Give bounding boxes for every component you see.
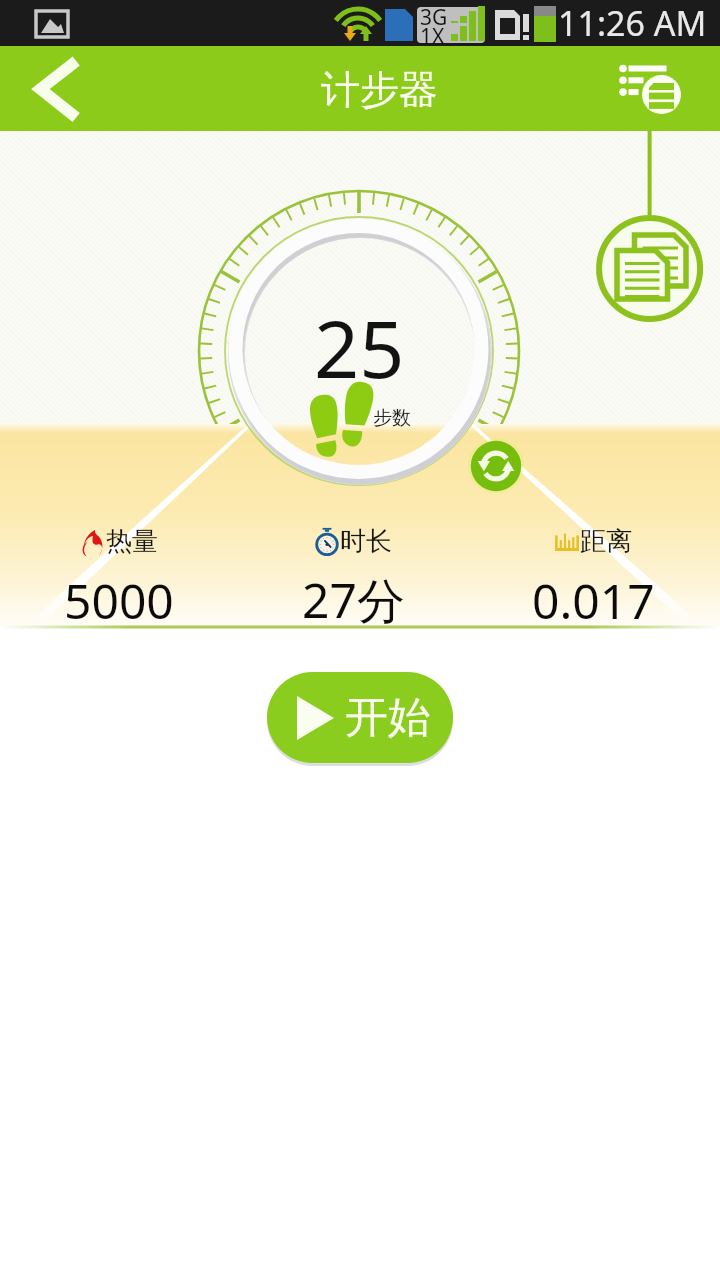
button[interactable]: Back xyxy=(0,46,112,131)
staticText: 距离 xyxy=(580,525,632,558)
button[interactable]: Records xyxy=(592,131,708,326)
staticText: 计步器 xyxy=(321,65,438,114)
staticText: 25 xyxy=(314,294,405,384)
staticText: 时长 xyxy=(340,525,392,558)
staticText: 5000 xyxy=(64,568,174,633)
button[interactable]: 热量 xyxy=(24,521,214,623)
button[interactable]: History xyxy=(608,46,720,131)
button[interactable]: 开始 xyxy=(267,672,453,763)
staticText: 1X xyxy=(420,22,445,51)
button[interactable]: Refresh xyxy=(468,438,524,494)
staticText: 11:26 AM xyxy=(558,0,707,46)
staticText: 0.017 xyxy=(532,568,655,633)
button[interactable]: 距离 xyxy=(498,521,688,623)
staticText: 3G xyxy=(420,3,448,32)
button[interactable]: 时长 xyxy=(258,521,448,623)
staticText: 27分 xyxy=(302,567,405,633)
staticText: 步数 xyxy=(373,406,411,430)
staticText: 开始 xyxy=(345,691,431,745)
staticText: 热量 xyxy=(106,525,158,558)
